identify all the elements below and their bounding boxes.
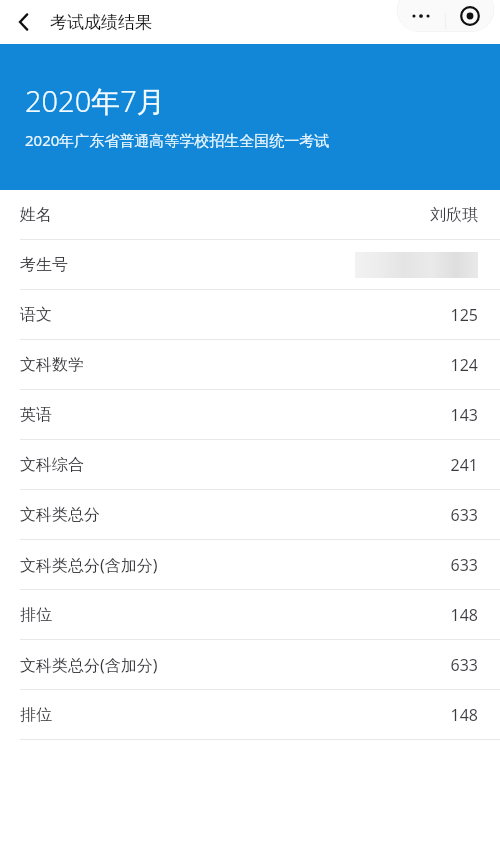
button[interactable]: 文科类总分	[0, 490, 500, 539]
staticText: 633	[450, 554, 478, 576]
staticText: 文科类总分	[20, 505, 100, 525]
button[interactable]: Back	[6, 4, 42, 40]
staticText: 2020年广东省普通高等学校招生全国统一考试	[25, 130, 330, 150]
button[interactable]: More options	[397, 0, 445, 32]
staticText: 148	[450, 604, 478, 626]
button[interactable]: 文科数学	[0, 340, 500, 389]
button[interactable]: 文科类总分(含加分)	[0, 640, 500, 689]
staticText: 语文	[20, 305, 52, 325]
staticText: 考生号	[20, 255, 68, 275]
button[interactable]: 语文	[0, 290, 500, 339]
staticText: 排位	[20, 605, 52, 625]
staticText: 英语	[20, 405, 52, 425]
staticText: 241	[450, 454, 478, 476]
staticText: 148	[450, 704, 478, 726]
button[interactable]: 姓名	[0, 190, 500, 239]
button[interactable]: 文科类总分(含加分)	[0, 540, 500, 589]
button[interactable]: 考生号	[0, 240, 500, 289]
button[interactable]: 排位	[0, 590, 500, 639]
staticText: 刘欣琪	[430, 205, 478, 225]
button[interactable]: 排位	[0, 690, 500, 739]
staticText: 文科综合	[20, 455, 84, 475]
staticText: 姓名	[20, 205, 52, 225]
staticText: 125	[450, 304, 478, 326]
staticText: 143	[450, 404, 478, 426]
button[interactable]: 文科综合	[0, 440, 500, 489]
staticText: 633	[450, 654, 478, 676]
button[interactable]: 英语	[0, 390, 500, 439]
staticText: 633	[450, 504, 478, 526]
staticText: 排位	[20, 705, 52, 725]
staticText: 文科数学	[20, 355, 84, 375]
staticText: 考试成绩结果	[50, 12, 152, 33]
staticText: 文科类总分(含加分)	[20, 554, 158, 576]
staticText: 文科类总分(含加分)	[20, 654, 158, 676]
staticText: 2020年7月	[25, 81, 166, 121]
button[interactable]: Close	[446, 0, 494, 32]
staticText: 124	[450, 354, 478, 376]
